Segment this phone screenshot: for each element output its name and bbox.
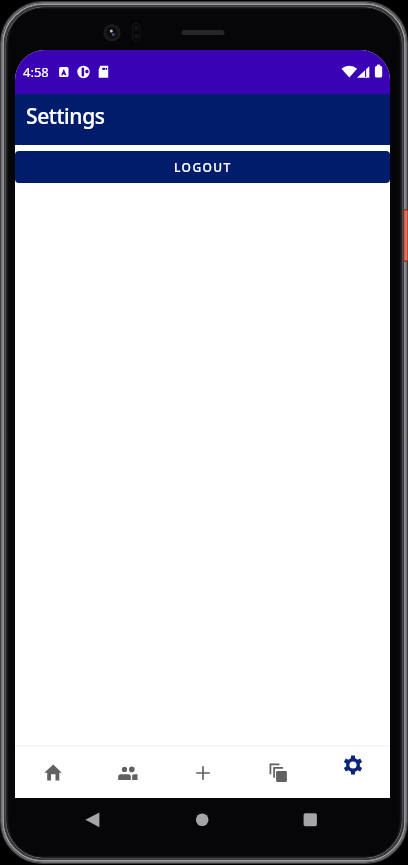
staticText: LOGOUT: [174, 159, 232, 175]
button[interactable]: Add: [165, 747, 240, 798]
button[interactable]: LOGOUT: [15, 151, 390, 183]
button[interactable]: Settings: [315, 747, 390, 798]
staticText: 4:58: [23, 63, 49, 81]
button[interactable]: People: [90, 747, 165, 798]
staticText: Settings: [26, 102, 105, 131]
button[interactable]: Home: [15, 747, 90, 798]
button[interactable]: Collections: [240, 747, 315, 798]
